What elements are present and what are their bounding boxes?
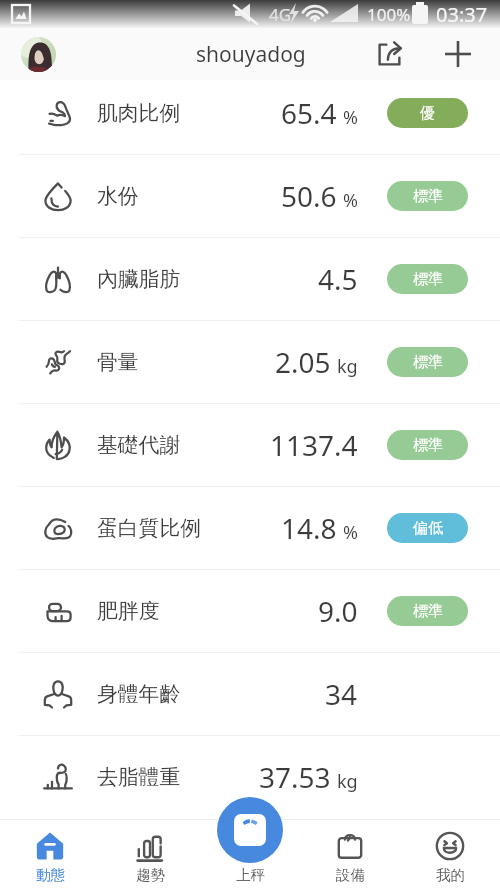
button[interactable]: 骨量 — [0, 321, 500, 403]
staticText: % — [343, 520, 358, 545]
button[interactable]: Weigh in — [217, 797, 283, 863]
staticText: 標準 — [413, 187, 443, 206]
button[interactable]: 肌肉比例 — [0, 72, 500, 154]
staticText: 50.6 — [281, 177, 337, 215]
button[interactable]: 設備 — [300, 819, 400, 889]
staticText: 標準 — [413, 436, 443, 455]
staticText: 趨勢 — [136, 866, 165, 884]
staticText: % — [343, 188, 358, 213]
staticText: 9.0 — [318, 592, 358, 630]
staticText: 標準 — [413, 353, 443, 372]
button[interactable]: 蛋白質比例 — [0, 487, 500, 569]
button[interactable]: 內臟脂肪 — [0, 238, 500, 320]
button[interactable]: 上秤 — [200, 819, 300, 889]
staticText: 上秤 — [236, 866, 265, 884]
button[interactable]: 肥胖度 — [0, 570, 500, 652]
staticText: 65.4 — [281, 94, 337, 132]
staticText: 14.8 — [281, 509, 337, 547]
button[interactable]: 身體年齡 — [0, 653, 500, 735]
staticText: 優 — [420, 104, 435, 123]
staticText: 03:37 — [436, 1, 488, 28]
staticText: 蛋白質比例 — [97, 515, 201, 541]
button[interactable]: 去脂體重 — [0, 736, 500, 818]
staticText: 去脂體重 — [97, 764, 181, 790]
staticText: 骨量 — [97, 349, 139, 375]
staticText: 設備 — [336, 866, 365, 884]
staticText: 100% — [367, 3, 411, 26]
staticText: 1137.4 — [270, 426, 358, 464]
staticText: 標準 — [413, 270, 443, 289]
button[interactable]: Profile — [21, 37, 56, 72]
staticText: kg — [337, 354, 358, 379]
button[interactable]: Add — [436, 32, 480, 76]
button[interactable]: 水份 — [0, 155, 500, 237]
button[interactable]: 我的 — [400, 819, 500, 889]
staticText: 肥胖度 — [97, 598, 160, 624]
staticText: kg — [337, 769, 358, 794]
staticText: 肌肉比例 — [97, 100, 181, 126]
staticText: 基礎代謝 — [97, 432, 181, 458]
staticText: 標準 — [413, 602, 443, 621]
staticText: shouyadog — [196, 40, 306, 69]
staticText: 動態 — [36, 866, 65, 884]
staticText: 我的 — [436, 866, 465, 884]
staticText: 4G — [269, 3, 292, 26]
staticText: % — [343, 105, 358, 130]
staticText: 偏低 — [413, 519, 443, 538]
staticText: 內臟脂肪 — [97, 266, 181, 292]
button[interactable]: 動態 — [0, 819, 100, 889]
staticText: 2.05 — [275, 343, 331, 381]
staticText: 水份 — [97, 183, 139, 209]
staticText: 37.53 — [259, 758, 331, 796]
button[interactable]: 基礎代謝 — [0, 404, 500, 486]
staticText: 4.5 — [318, 260, 358, 298]
button[interactable]: 趨勢 — [100, 819, 200, 889]
button[interactable]: Share — [368, 32, 412, 76]
staticText: 身體年齡 — [97, 681, 181, 707]
staticText: 34 — [325, 675, 358, 713]
